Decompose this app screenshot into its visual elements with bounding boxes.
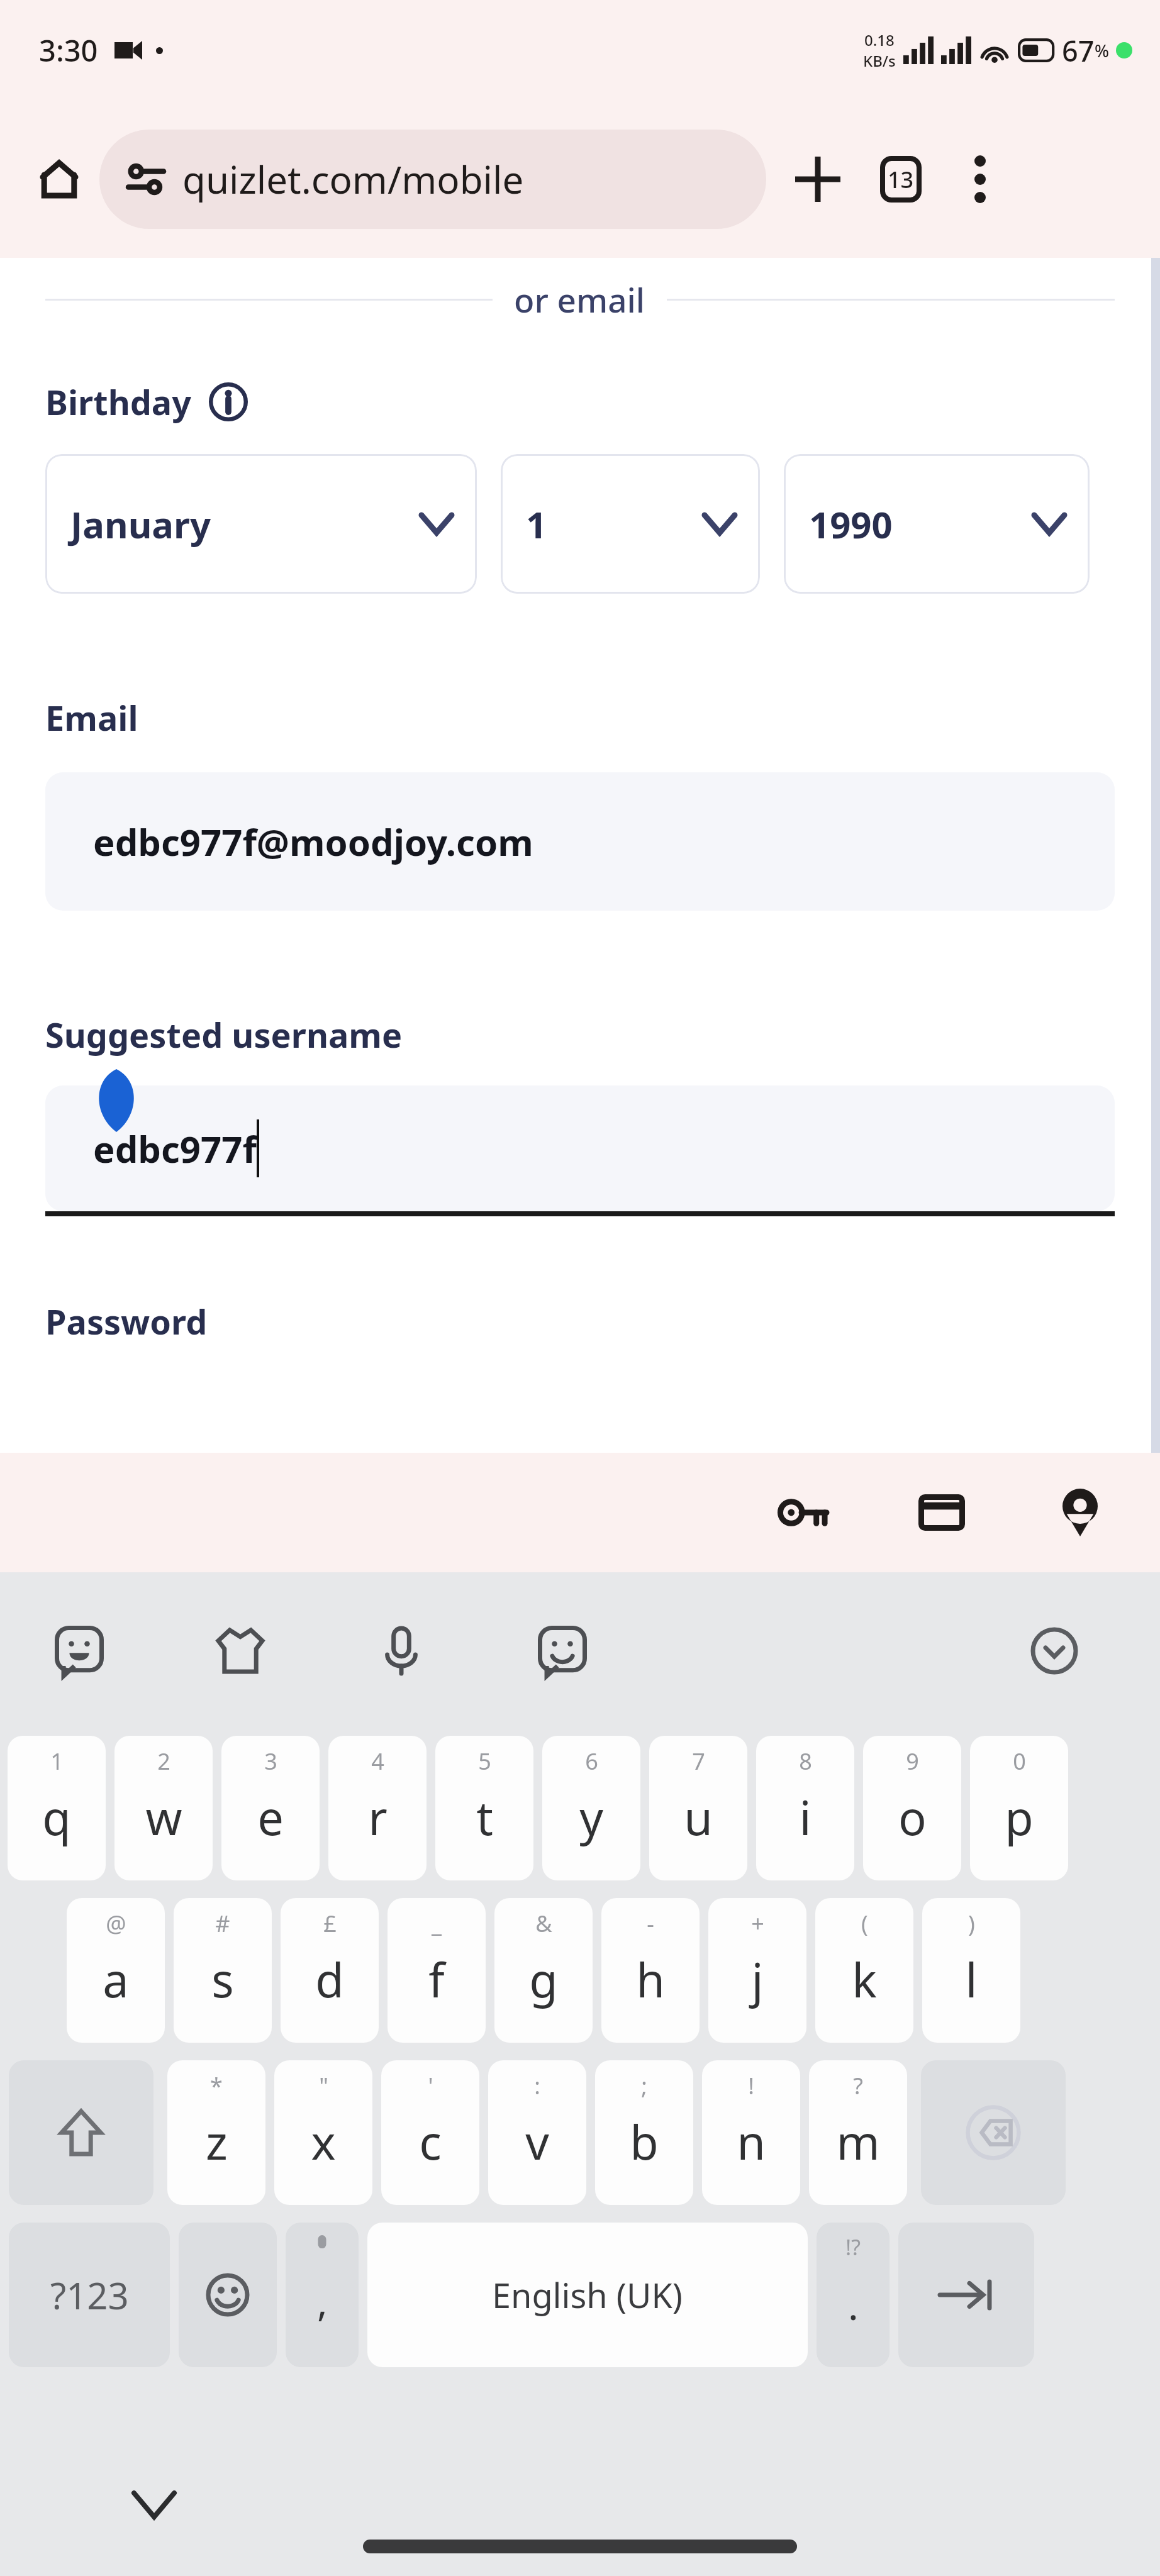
button[interactable]: # [174, 1898, 272, 2043]
button[interactable]: Home [24, 144, 94, 214]
button[interactable]: Themes [203, 1613, 278, 1689]
staticText: 2 [157, 1746, 170, 1777]
button[interactable]: Shift [9, 2060, 153, 2205]
button[interactable]: " [274, 2060, 372, 2205]
button[interactable]: 5 [435, 1736, 533, 1880]
staticText: 1 [50, 1746, 64, 1777]
staticText: 6 [585, 1746, 598, 1777]
staticText: z [206, 2110, 228, 2173]
staticText: k [852, 1948, 877, 2011]
button[interactable]: quizlet.com/mobile [99, 130, 766, 229]
button[interactable]: _ [388, 1898, 486, 2043]
button[interactable]: 1990 [784, 454, 1090, 594]
button[interactable]: New tab [783, 144, 853, 214]
staticText: ?123 [50, 2270, 129, 2320]
button[interactable]: : [488, 2060, 586, 2205]
button[interactable]: , [286, 2223, 359, 2367]
button[interactable]: 1 [501, 454, 760, 594]
staticText: 4 [371, 1746, 384, 1777]
button[interactable]: Passwords [756, 1465, 850, 1560]
button[interactable]: 1 [8, 1736, 106, 1880]
button[interactable]: 8 [756, 1736, 854, 1880]
staticText: 67 [1062, 31, 1095, 70]
staticText: p [1005, 1785, 1034, 1849]
staticText: c [419, 2110, 442, 2173]
button[interactable]: Hide keyboard [120, 2470, 189, 2540]
button[interactable]: + [708, 1898, 806, 2043]
button[interactable]: - [601, 1898, 700, 2043]
button[interactable]: Next field [898, 2223, 1034, 2367]
button[interactable]: £ [281, 1898, 379, 2043]
button[interactable]: edbc977f@moodjoy.com [45, 772, 1115, 911]
staticText: £ [323, 1908, 337, 1939]
staticText: % [1095, 39, 1110, 62]
button[interactable]: ! [702, 2060, 800, 2205]
button[interactable]: January [45, 454, 477, 594]
staticText: Birthday [45, 379, 192, 425]
button[interactable]: ( [815, 1898, 913, 2043]
staticText: _ [432, 1908, 442, 1939]
button[interactable]: 7 [649, 1736, 747, 1880]
button[interactable]: Tabs: 13 [866, 144, 936, 214]
staticText: !? [845, 2233, 861, 2262]
button[interactable]: 2 [114, 1736, 213, 1880]
button[interactable]: Payment methods [895, 1465, 989, 1560]
staticText: # [215, 1908, 230, 1939]
staticText: o [898, 1785, 927, 1849]
button[interactable]: ? [809, 2060, 907, 2205]
button[interactable]: @ [67, 1898, 165, 2043]
button[interactable]: 9 [863, 1736, 961, 1880]
button[interactable]: Birthday info [207, 380, 250, 423]
button[interactable]: !? [817, 2223, 890, 2367]
staticText: + [751, 1908, 764, 1939]
button[interactable]: English (UK) [367, 2223, 808, 2367]
staticText: 3:30 [39, 30, 98, 70]
staticText: y [579, 1785, 603, 1849]
staticText: Suggested username [45, 1011, 403, 1058]
staticText: ; [641, 2070, 647, 2101]
staticText: f [428, 1948, 445, 2011]
button[interactable]: * [167, 2060, 265, 2205]
staticText: ) [968, 1908, 975, 1939]
button[interactable]: ' [381, 2060, 479, 2205]
staticText: @ [106, 1908, 126, 1939]
staticText: ( [861, 1908, 868, 1939]
button[interactable]: Voice input [364, 1613, 439, 1689]
button[interactable]: ) [922, 1898, 1020, 2043]
staticText: 13 [888, 164, 914, 195]
staticText: or email [514, 277, 645, 322]
button[interactable]: 0 [970, 1736, 1068, 1880]
staticText: b [630, 2110, 659, 2173]
button[interactable]: ?123 [9, 2223, 170, 2367]
staticText: : [534, 2070, 540, 2101]
button[interactable]: Collapse [1017, 1613, 1092, 1689]
staticText: edbc977f [93, 1124, 257, 1174]
button[interactable]: Backspace [921, 2060, 1066, 2205]
staticText: a [103, 1948, 129, 2011]
staticText: u [684, 1785, 713, 1849]
staticText: s [211, 1948, 234, 2011]
button[interactable]: ; [595, 2060, 693, 2205]
staticText: Password [45, 1298, 208, 1345]
button[interactable]: Stickers [42, 1613, 117, 1689]
button[interactable]: & [494, 1898, 593, 2043]
staticText: KB/s [863, 50, 896, 71]
button[interactable]: Emoji [525, 1613, 600, 1689]
staticText: 8 [799, 1746, 812, 1777]
button[interactable]: Emoji [179, 2223, 277, 2367]
staticText: edbc977f@moodjoy.com [93, 817, 533, 867]
staticText: v [525, 2110, 549, 2173]
staticText: g [529, 1948, 558, 2011]
button[interactable]: edbc977f [45, 1085, 1115, 1211]
staticText: d [315, 1948, 344, 2011]
staticText: quizlet.com/mobile [182, 153, 524, 205]
button[interactable]: 3 [221, 1736, 320, 1880]
button[interactable]: 6 [542, 1736, 640, 1880]
button[interactable]: 4 [328, 1736, 427, 1880]
button[interactable]: More options [945, 144, 1015, 214]
staticText: . [848, 2279, 859, 2331]
staticText: q [42, 1785, 71, 1849]
staticText: w [145, 1785, 182, 1849]
button[interactable]: Addresses [1033, 1465, 1127, 1560]
staticText: ? [853, 2070, 863, 2101]
